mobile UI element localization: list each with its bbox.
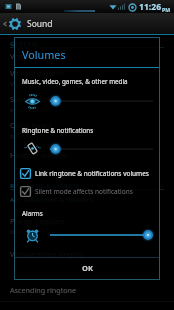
staticText: GENERAL: [10, 40, 40, 48]
staticText: Vibrate when ringing: [10, 249, 84, 259]
staticText: PM: [162, 6, 171, 13]
staticText: ALL RINGTONE & VIBRATE: [10, 196, 94, 204]
staticText: Vibrate pattern style: [10, 80, 68, 88]
staticText: OK: [82, 263, 93, 273]
staticText: expandable: [10, 106, 43, 114]
staticText: RINGTONE & VIBRATE: [10, 182, 80, 190]
staticText: Headset volume: [10, 150, 68, 160]
button[interactable]: OK: [15, 258, 159, 277]
staticText: Alarms: [22, 209, 43, 218]
button[interactable]: [44, 142, 155, 156]
staticText: Volumes: [10, 51, 41, 61]
button[interactable]: Link ringtone & notifications volumes: [20, 166, 160, 180]
staticText: Silent mode affects notifications: [35, 187, 133, 196]
staticText: Volumes: [22, 47, 66, 62]
staticText: quiet hours: [10, 132, 43, 140]
staticText: Ringtone & notifications: [22, 126, 94, 135]
button[interactable]: [44, 228, 155, 242]
staticText: Vibrate pattern: [10, 68, 64, 78]
staticText: Link ringtone & notifications volumes: [35, 169, 149, 178]
staticText: Quiet hours: [10, 120, 52, 130]
staticText: Ascending ringtone: [10, 285, 77, 295]
button[interactable]: Silent mode affects notifications: [20, 184, 160, 198]
staticText: Phone ringtone: [10, 216, 65, 226]
staticText: Silent mode: [10, 94, 52, 104]
button[interactable]: [44, 94, 155, 108]
button[interactable]: Navigate up to Settings: [2, 17, 53, 31]
staticText: Default ringtone: [10, 228, 57, 236]
staticText: 11:26: [139, 1, 162, 13]
staticText: Sound: [27, 18, 53, 30]
staticText: Music, video, games, & other media: [22, 77, 128, 86]
